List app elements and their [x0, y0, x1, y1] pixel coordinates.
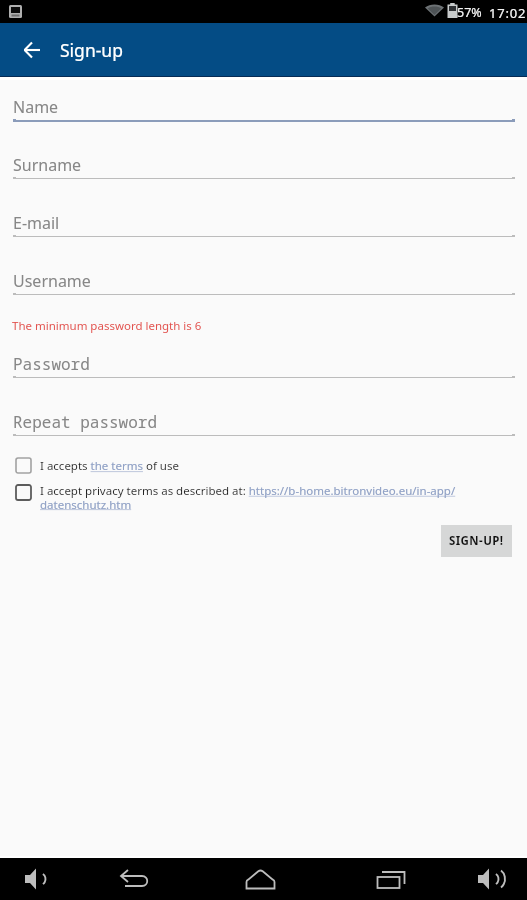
staticText: Password	[13, 353, 90, 375]
button[interactable]: Username	[13, 266, 515, 296]
staticText: I accept privacy terms as described at: …	[40, 483, 460, 512]
staticText: Repeat password	[13, 411, 158, 433]
button[interactable]: Surname	[13, 150, 515, 180]
button[interactable]: Name	[13, 92, 515, 122]
button[interactable]: Password	[13, 349, 515, 379]
button[interactable]: SIGN-UP!	[441, 525, 512, 557]
button[interactable]: I accept privacy terms as described at: …	[13, 483, 460, 512]
button[interactable]: Volume down	[0, 858, 72, 900]
staticText: SIGN-UP!	[449, 533, 504, 549]
button[interactable]: E-mail	[13, 208, 515, 238]
button[interactable]: Back	[79, 858, 192, 900]
button[interactable]: I accepts the terms of use	[13, 456, 179, 475]
staticText: 17:02	[489, 4, 527, 22]
staticText: 57%	[457, 4, 482, 21]
staticText: Sign-up	[60, 38, 123, 62]
staticText: E-mail	[13, 212, 60, 234]
button[interactable]: Back	[10, 28, 54, 72]
button[interactable]: Home	[185, 858, 337, 900]
staticText: Name	[13, 96, 59, 118]
staticText: I accepts the terms of use	[40, 458, 179, 474]
button[interactable]: Repeat password	[13, 407, 515, 437]
button[interactable]: Recents	[337, 858, 447, 900]
staticText: Username	[13, 270, 91, 292]
button[interactable]: Volume up	[447, 858, 527, 900]
staticText: The minimum password length is 6	[12, 318, 202, 334]
staticText: Surname	[13, 154, 82, 176]
